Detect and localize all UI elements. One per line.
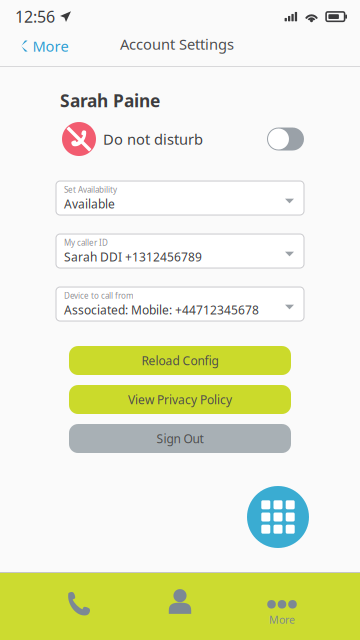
button[interactable]: View Privacy Policy <box>69 385 291 414</box>
staticText: 12:56 <box>15 6 55 27</box>
staticText: Sarah DDI +1312456789 <box>64 249 202 265</box>
staticText: Set Availability <box>64 184 117 195</box>
button[interactable]: More <box>231 573 333 640</box>
staticText: Associated: Mobile: +44712345678 <box>64 302 259 318</box>
button[interactable]: Sign Out <box>69 424 291 453</box>
button[interactable]: Contacts <box>129 573 231 640</box>
button[interactable]: Device to call from <box>56 287 304 321</box>
staticText: My caller ID <box>64 237 108 248</box>
staticText: Sign Out <box>156 430 203 446</box>
staticText: View Privacy Policy <box>128 391 232 407</box>
button[interactable]: My caller ID <box>56 234 304 268</box>
staticText: More <box>269 613 295 627</box>
staticText: Device to call from <box>64 290 133 301</box>
button[interactable]: Reload Config <box>69 346 291 375</box>
button[interactable]: Set Availability <box>56 181 304 215</box>
staticText: Reload Config <box>141 352 218 368</box>
button[interactable]: More <box>0 26 81 66</box>
staticText: Sarah Paine <box>60 89 160 112</box>
staticText: Available <box>64 196 115 212</box>
button[interactable]: Dial pad <box>247 486 309 548</box>
staticText: Account Settings <box>120 34 234 54</box>
button[interactable]: Calls <box>27 573 129 640</box>
button[interactable]: Do not disturb <box>267 127 304 150</box>
staticText: More <box>33 36 69 56</box>
staticText: Do not disturb <box>103 129 203 149</box>
